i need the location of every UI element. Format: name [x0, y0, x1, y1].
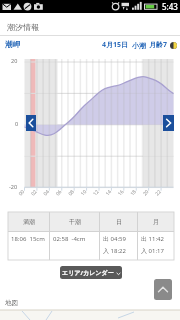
- staticText: 18:06 15cm: [11, 235, 45, 243]
- staticText: 干潮: [69, 218, 81, 226]
- button[interactable]: Previous day: [26, 115, 36, 131]
- button[interactable]: Next day: [163, 115, 174, 131]
- button[interactable]: エリア/カレンダー: [60, 266, 122, 279]
- staticText: 20: [11, 57, 18, 64]
- staticText: 出 11:42: [141, 235, 164, 243]
- button[interactable]: 潮岬: [5, 40, 20, 49]
- staticText: 地図: [5, 299, 18, 307]
- staticText: 小潮: [132, 41, 146, 50]
- staticText: -20: [9, 183, 18, 190]
- staticText: 4月15日: [102, 40, 129, 50]
- staticText: 入 18:22: [103, 247, 126, 255]
- staticText: 入 01:17: [141, 247, 164, 255]
- staticText: 満潮: [23, 218, 35, 226]
- staticText: 日: [116, 218, 122, 226]
- staticText: 5:43: [162, 1, 178, 12]
- staticText: 月: [153, 218, 159, 226]
- staticText: 出 04:59: [103, 235, 126, 243]
- button[interactable]: Scroll to top: [154, 279, 172, 300]
- staticText: 潮汐情報: [7, 22, 39, 32]
- staticText: エリア/カレンダー: [62, 269, 114, 277]
- staticText: 02:58 -4cm: [53, 235, 86, 243]
- staticText: 0: [15, 120, 19, 127]
- staticText: 月齢7: [149, 40, 168, 50]
- button[interactable]: 4月15日: [102, 40, 177, 50]
